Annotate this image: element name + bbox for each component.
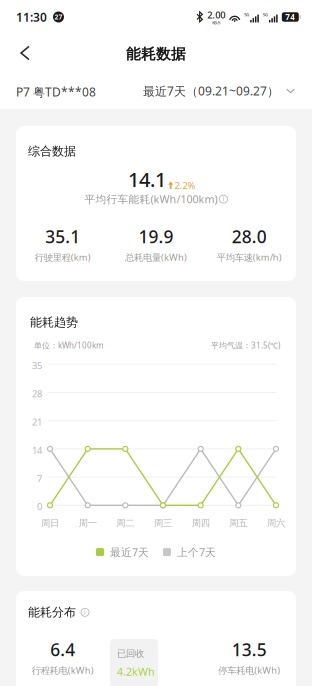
staticText: P7 粤TD***08 [16,84,96,100]
staticText: i [222,194,224,203]
staticText: 能耗分布 [28,605,76,620]
staticText: 14 [32,444,42,456]
staticText: 平均行车能耗(kWh/100km) [84,192,217,206]
staticText: 行驶里程(km) [35,251,91,263]
staticText: 平均气温：31.5(℃) [211,340,280,351]
staticText: 上个7天 [177,545,216,559]
staticText: 13.5 [232,638,267,661]
staticText: 6.4 [50,638,75,661]
staticText: 28 [32,387,42,400]
staticText: 能耗趋势 [30,315,78,330]
staticText: 平均车速(km/h) [217,251,282,263]
staticText: 74 [285,12,295,22]
staticText: 19.9 [138,225,173,248]
staticText: 周五 [229,517,247,529]
staticText: 35 [32,359,42,372]
staticText: 最近7天（09.21~09.27） [143,83,279,99]
staticText: 2.00 [207,9,225,21]
staticText: 行程耗电(kWh) [32,664,94,676]
staticText: KB/S [212,20,220,25]
staticText: 周日 [41,517,59,529]
staticText: 周一 [79,517,97,529]
staticText: 单位：kWh/100km [34,340,103,351]
staticText: 35.1 [45,225,80,248]
button[interactable]: 最近7天（09.21~09.27） [143,77,295,105]
staticText: 4.2kWh [117,664,155,679]
staticText: 14.1 [128,166,166,193]
staticText: 11:30 [16,9,47,25]
staticText: 7 [37,472,42,484]
staticText: 5G [244,12,249,17]
staticText: i [84,608,86,616]
staticText: 能耗数据 [126,45,186,63]
staticText: 27 [54,13,62,21]
staticText: 周六 [267,517,285,529]
staticText: 21 [32,416,42,428]
staticText: 已回收 [117,648,144,659]
staticText: 综合数据 [28,144,76,159]
staticText: 周四 [192,517,210,529]
staticText: 周二 [116,517,134,529]
staticText: 5G [263,12,268,17]
staticText: 周三 [154,517,172,529]
button[interactable]: 返回 [8,34,42,72]
staticText: 最近7天 [110,545,149,559]
button[interactable]: P7 粤TD***08 [16,78,96,106]
staticText: 停车耗电(kWh) [218,664,280,676]
staticText: 总耗电量(kWh) [125,251,187,263]
staticText: 28.0 [232,225,267,248]
staticText: 2.2% [174,179,195,192]
staticText: 0 [37,500,42,513]
